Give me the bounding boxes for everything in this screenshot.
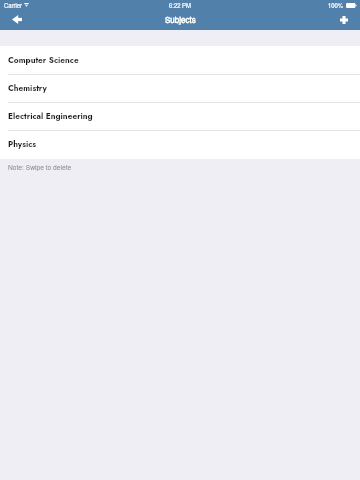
- button[interactable]: Add: [328, 10, 360, 29]
- staticText: Electrical Engineering: [8, 110, 93, 122]
- staticText: 6:22 PM: [169, 1, 191, 9]
- button[interactable]: Chemistry: [0, 75, 360, 103]
- staticText: Subjects: [165, 14, 196, 25]
- button[interactable]: Electrical Engineering: [0, 103, 360, 131]
- staticText: Note: Swipe to delete: [8, 162, 72, 172]
- staticText: Chemistry: [8, 82, 47, 94]
- button[interactable]: Back: [0, 10, 34, 29]
- staticText: Carrier: [4, 1, 22, 9]
- staticText: 100%: [328, 1, 344, 9]
- button[interactable]: Physics: [0, 131, 360, 159]
- staticText: Computer Science: [8, 54, 79, 66]
- staticText: Physics: [8, 138, 37, 150]
- button[interactable]: Computer Science: [0, 47, 360, 75]
